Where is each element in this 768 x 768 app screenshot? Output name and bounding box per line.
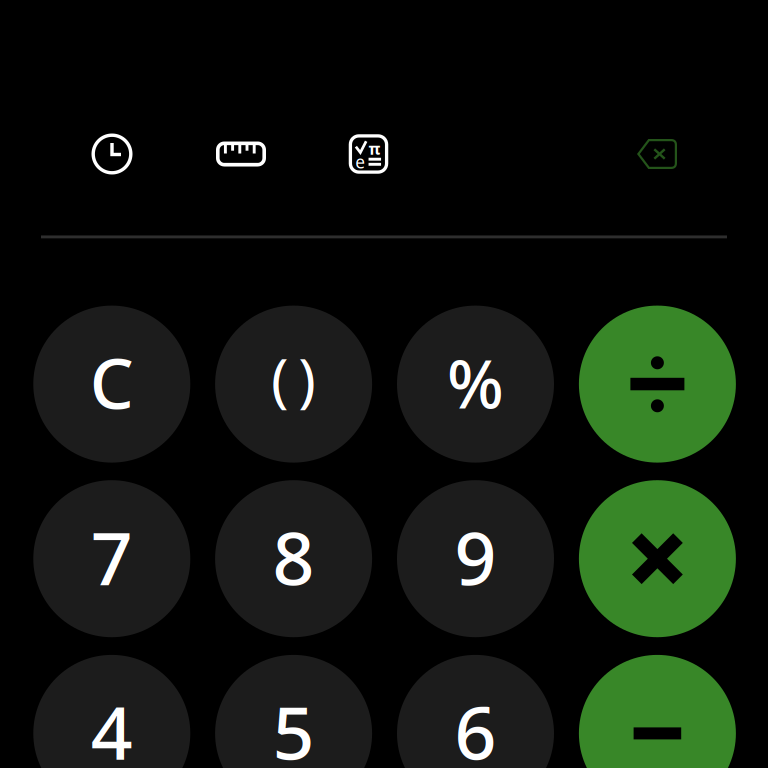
button[interactable]: History <box>80 122 144 186</box>
staticText: 7 <box>91 508 133 605</box>
button[interactable]: Divide <box>579 306 736 463</box>
button[interactable]: Subtract <box>579 655 736 768</box>
button[interactable]: Scientific functions <box>336 122 400 186</box>
button[interactable]: 4 <box>33 655 190 768</box>
staticText: 6 <box>454 683 496 768</box>
staticText: ) <box>298 339 316 417</box>
button[interactable]: 9 <box>397 480 554 637</box>
button[interactable]: 8 <box>215 480 372 637</box>
staticText: ( <box>271 339 289 417</box>
staticText: 5 <box>273 683 315 768</box>
staticText: 9 <box>454 508 496 605</box>
button[interactable]: Multiply <box>579 480 736 637</box>
staticText: C <box>90 336 134 428</box>
staticText: % <box>447 338 504 427</box>
button[interactable]: Delete <box>625 122 689 186</box>
button[interactable]: 5 <box>215 655 372 768</box>
button[interactable]: 6 <box>397 655 554 768</box>
staticText: 4 <box>91 683 133 768</box>
button[interactable]: Parentheses <box>215 306 372 463</box>
button[interactable]: 7 <box>33 480 190 637</box>
button[interactable]: Unit converter <box>209 122 273 186</box>
staticText: 8 <box>273 508 315 605</box>
button[interactable]: % <box>397 306 554 463</box>
button[interactable]: C <box>33 306 190 463</box>
